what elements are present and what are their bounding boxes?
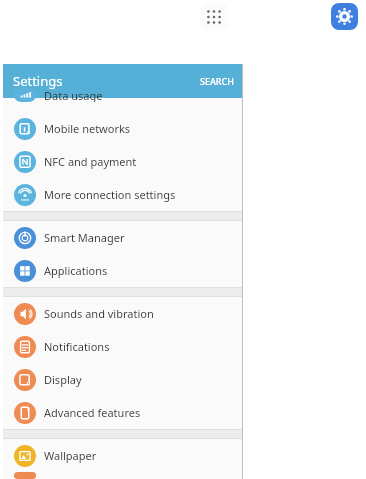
button[interactable]: Applications <box>3 254 243 287</box>
button[interactable]: Sounds and vibration <box>3 297 243 330</box>
button[interactable]: More connection settings <box>3 178 243 211</box>
staticText: Settings <box>13 72 63 90</box>
button[interactable]: Apps <box>200 3 228 31</box>
button[interactable]: Display <box>3 363 243 396</box>
button[interactable]: Data usage <box>3 98 243 112</box>
staticText: Applications <box>44 263 108 278</box>
staticText: Display <box>44 372 82 387</box>
button[interactable] <box>3 472 243 479</box>
staticText: Wallpaper <box>44 448 97 463</box>
button[interactable]: Smart Manager <box>3 221 243 254</box>
staticText: Notifications <box>44 339 110 354</box>
staticText: Data usage <box>44 88 103 102</box>
staticText: Mobile networks <box>44 121 131 136</box>
button[interactable]: Mobile networks <box>3 112 243 145</box>
staticText: Sounds and vibration <box>44 306 154 321</box>
button[interactable]: Settings <box>331 3 358 30</box>
button[interactable]: Notifications <box>3 330 243 363</box>
button[interactable]: NFC and payment <box>3 145 243 178</box>
staticText: NFC and payment <box>44 154 137 169</box>
staticText: SEARCH <box>200 75 234 87</box>
staticText: Smart Manager <box>44 230 125 245</box>
staticText: More connection settings <box>44 187 176 202</box>
button[interactable]: Settings <box>13 72 63 90</box>
button[interactable]: Wallpaper <box>3 439 243 472</box>
staticText: Advanced features <box>44 405 141 420</box>
button[interactable]: SEARCH <box>200 75 234 87</box>
button[interactable]: Advanced features <box>3 396 243 429</box>
